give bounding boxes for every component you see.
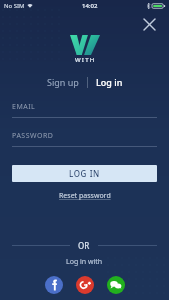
button[interactable]: Close	[139, 14, 159, 34]
staticText: No SIM	[4, 2, 25, 10]
staticText: OR	[78, 240, 90, 251]
staticText: Reset password	[59, 191, 111, 201]
staticText: LOG IN	[69, 168, 100, 179]
button[interactable]: Google Plus	[76, 276, 94, 294]
staticText: Log in with	[66, 257, 103, 267]
staticText: WITH	[75, 56, 96, 64]
staticText: 14:02	[82, 2, 98, 10]
button[interactable]: LOG IN	[12, 165, 157, 182]
button[interactable]: Sign up	[39, 73, 87, 91]
staticText: EMAIL	[12, 102, 36, 112]
button[interactable]: Facebook	[45, 276, 63, 294]
staticText: Sign up	[47, 76, 79, 88]
button[interactable]: Reset password	[53, 189, 117, 203]
staticText: Log in	[96, 76, 123, 88]
button[interactable]: Log in	[88, 73, 131, 91]
staticText: PASSWORD	[12, 131, 54, 141]
button[interactable]: WeChat	[107, 276, 125, 294]
